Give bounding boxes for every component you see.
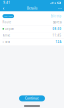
button[interactable]: Arrive <box>0 32 64 39</box>
staticText: 08:30 <box>52 27 61 31</box>
button[interactable]: Depart <box>0 26 64 32</box>
button[interactable]: Route <box>0 19 64 25</box>
staticText: Express <box>52 20 61 24</box>
staticText: 11:45 <box>52 34 61 37</box>
button[interactable]: Edit trip <box>50 14 61 18</box>
staticText: CONFIRMED <box>4 15 13 17</box>
button[interactable]: More options <box>57 6 64 11</box>
staticText: 9:41 <box>3 1 10 4</box>
button[interactable]: Back <box>0 6 7 11</box>
staticText: Continue <box>25 97 39 100</box>
staticText: Seat <box>5 40 10 44</box>
staticText: Edit trip <box>50 14 61 18</box>
staticText: Details <box>27 7 37 10</box>
staticText: Route <box>2 20 11 24</box>
button[interactable]: CONFIRMED <box>2 14 14 18</box>
button[interactable]: Seat <box>0 39 64 45</box>
staticText: Depart <box>5 27 14 31</box>
staticText: 12A <box>55 40 61 44</box>
button[interactable]: Continue <box>19 95 45 101</box>
staticText: Arrive <box>2 34 10 37</box>
